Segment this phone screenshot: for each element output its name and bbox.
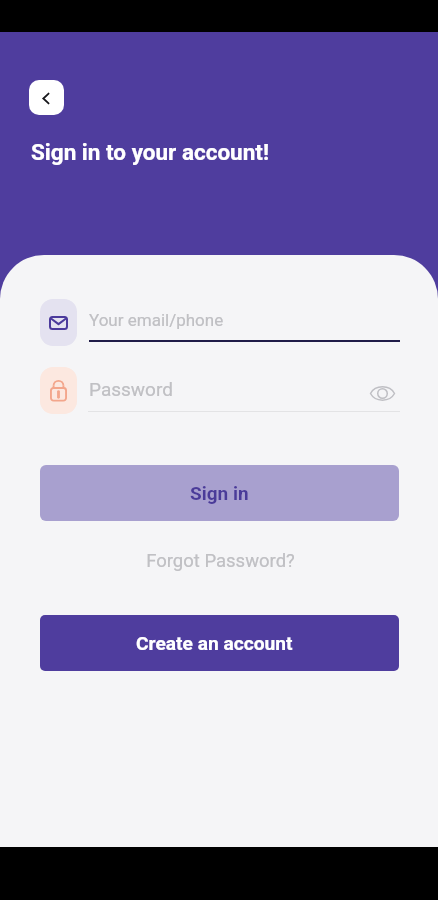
button[interactable]: Back xyxy=(29,80,64,115)
staticText: Your email/phone xyxy=(89,310,224,330)
button[interactable]: Create an account xyxy=(40,615,399,671)
button[interactable]: Forgot Password? xyxy=(140,546,300,576)
button[interactable]: Sign in xyxy=(40,465,399,521)
button[interactable]: Your email/phone xyxy=(40,299,400,346)
staticText: Forgot Password? xyxy=(146,550,295,572)
button[interactable]: Password xyxy=(40,367,400,414)
staticText: Create an account xyxy=(136,632,293,655)
staticText: Sign in to your account! xyxy=(31,139,270,165)
staticText: Sign in xyxy=(190,482,249,504)
button[interactable]: Show password xyxy=(369,381,395,405)
staticText: Password xyxy=(89,378,173,400)
